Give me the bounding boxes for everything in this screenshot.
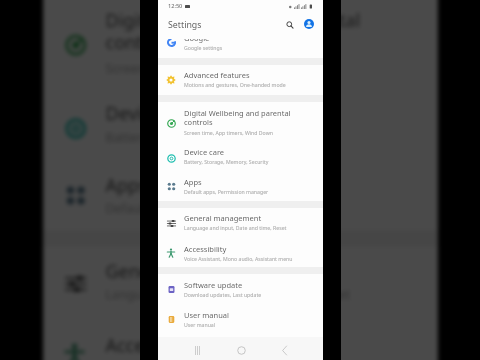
button[interactable]: Accessibility [158, 238, 323, 267]
staticText: Digital Wellbeing and parental controls [106, 8, 423, 56]
staticText: Voice Assistant, Mono audio, Assistant m… [106, 359, 366, 360]
button[interactable]: Apps [158, 172, 323, 201]
button[interactable]: Accessibility [43, 318, 437, 360]
staticText: Google settings [184, 44, 223, 51]
staticText: Digital Wellbeing and parental controls [184, 108, 317, 128]
staticText: Default apps, Permission manager [106, 199, 309, 216]
staticText: Apps [106, 173, 149, 197]
staticText: General management [184, 213, 262, 223]
button[interactable]: Software update [158, 274, 323, 305]
button[interactable]: Search [283, 18, 297, 32]
staticText: Screen time, App timers, Wind Down [184, 129, 273, 136]
staticText: Apps [184, 177, 202, 187]
staticText: Accessibility [184, 244, 227, 254]
staticText: Google [184, 39, 210, 43]
staticText: Battery, Storage, Memory, Security [184, 158, 269, 165]
staticText: Battery, Storage, Memory, Security [106, 127, 309, 144]
staticText: Language and input, Date and time, Reset [184, 224, 287, 231]
button[interactable]: User manual [158, 305, 323, 334]
staticText: Motions and gestures, One-handed mode [184, 81, 286, 88]
staticText: General management [106, 259, 292, 283]
staticText: Download updates, Last update [184, 291, 262, 298]
staticText: Software update [184, 280, 243, 290]
staticText: Advanced features [184, 70, 250, 80]
button[interactable]: Google [158, 39, 323, 58]
staticText: Screen time, App timers, Wind Down [106, 58, 318, 75]
staticText: Device care [106, 101, 203, 125]
button[interactable]: Apps [43, 161, 437, 230]
button[interactable]: Back [273, 339, 295, 360]
staticText: User manual [184, 310, 229, 320]
staticText: Settings [168, 19, 202, 31]
staticText: Voice Assistant, Mono audio, Assistant m… [184, 255, 293, 262]
staticText: User manual [184, 321, 216, 328]
staticText: Device care [184, 147, 225, 157]
button[interactable]: Device care [158, 144, 323, 172]
button[interactable]: Digital Wellbeing and parental controls [158, 102, 323, 144]
button[interactable]: General management [43, 247, 437, 318]
button[interactable]: Device care [43, 94, 437, 161]
button[interactable]: Account [302, 17, 316, 31]
staticText: 12:50 [168, 2, 183, 10]
staticText: Accessibility [106, 333, 208, 357]
button[interactable]: General management [158, 208, 323, 238]
staticText: Default apps, Permission manager [184, 188, 269, 195]
button[interactable]: Home [230, 339, 252, 360]
button[interactable]: Advanced features [158, 65, 323, 95]
button[interactable]: Digital Wellbeing and parental controls [43, 0, 437, 94]
button[interactable]: Recent apps [186, 339, 208, 360]
staticText: Language and input, Date and time, Reset [106, 285, 352, 302]
